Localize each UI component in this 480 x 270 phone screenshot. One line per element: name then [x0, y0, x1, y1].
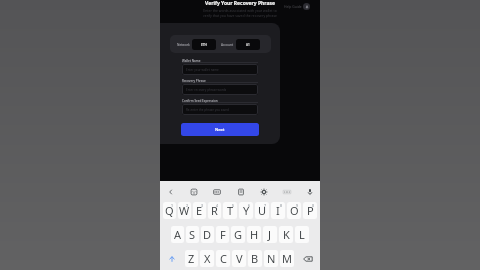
button[interactable]: Stickers	[187, 185, 200, 198]
staticText: U	[258, 203, 267, 218]
staticText: N	[267, 251, 276, 266]
staticText: Confirm Seed Expression	[182, 99, 218, 103]
button[interactable]: Shift	[161, 250, 183, 267]
button[interactable]: G	[231, 226, 245, 243]
staticText: O	[290, 203, 299, 218]
button[interactable]: Enter your wallet name	[182, 64, 258, 75]
button[interactable]: E	[193, 202, 206, 219]
button[interactable]: Back	[164, 185, 177, 198]
button[interactable]: J	[263, 226, 277, 243]
staticText: A	[174, 227, 182, 242]
button[interactable]: Account	[303, 3, 310, 10]
staticText: B	[251, 251, 259, 266]
button[interactable]: GIF	[210, 185, 223, 198]
button[interactable]: S	[186, 226, 199, 243]
button[interactable]: U	[255, 202, 269, 219]
button[interactable]: P	[303, 202, 317, 219]
button[interactable]: Settings	[257, 185, 270, 198]
staticText: 5	[232, 203, 235, 208]
button[interactable]: Y	[239, 202, 253, 219]
button[interactable]: Enter recovery phrase words	[182, 84, 258, 95]
staticText: Verify Your Recovery Phrase	[205, 0, 275, 7]
button[interactable]: K	[279, 226, 293, 243]
button[interactable]: N	[264, 250, 278, 267]
button[interactable]: M	[280, 250, 294, 267]
button[interactable]: O	[287, 202, 301, 219]
staticText: H	[250, 227, 259, 242]
staticText: Recovery Phrase	[182, 79, 206, 83]
staticText: X	[204, 251, 211, 266]
staticText: W	[179, 203, 190, 218]
staticText: 4	[216, 203, 219, 208]
staticText: C	[220, 251, 227, 266]
staticText: 7	[264, 203, 267, 208]
button[interactable]: More options	[280, 185, 293, 198]
staticText: M	[282, 251, 292, 266]
button[interactable]: D	[201, 226, 214, 243]
button[interactable]: F	[216, 226, 229, 243]
staticText: ETH	[201, 43, 207, 47]
staticText: Enter recovery phrase words	[186, 88, 227, 92]
button[interactable]: Backspace	[296, 250, 319, 267]
staticText: Z	[188, 251, 195, 266]
button[interactable]: I	[271, 202, 285, 219]
button[interactable]: V	[232, 250, 246, 267]
staticText: 2	[186, 203, 189, 208]
staticText: J	[268, 227, 272, 242]
staticText: Q	[165, 203, 174, 218]
staticText: Help Guide	[284, 4, 302, 9]
staticText: I	[276, 203, 280, 218]
button[interactable]: A	[171, 226, 184, 243]
staticText: Y	[243, 203, 250, 218]
staticText: K	[283, 227, 290, 242]
staticText: 3	[201, 203, 204, 208]
staticText: 8	[280, 203, 283, 208]
button[interactable]: C	[216, 250, 230, 267]
button[interactable]: R	[208, 202, 221, 219]
button[interactable]: Voice input	[303, 185, 316, 198]
button[interactable]: B	[248, 250, 262, 267]
button[interactable]: H	[247, 226, 261, 243]
staticText: 1	[171, 203, 174, 208]
button[interactable]: Re-enter the phrase you saved	[182, 104, 258, 115]
staticText: 6	[248, 203, 251, 208]
staticText: L	[299, 227, 305, 242]
button[interactable]: T	[223, 202, 237, 219]
staticText: T	[227, 203, 234, 218]
button[interactable]: Clipboard	[234, 185, 247, 198]
staticText: G	[234, 227, 243, 242]
staticText: Next	[215, 127, 225, 133]
button[interactable]: Network	[177, 39, 216, 50]
staticText: 9	[296, 203, 299, 208]
staticText: Wallet Name	[182, 59, 201, 63]
staticText: 0	[312, 203, 315, 208]
button[interactable]: Account	[221, 39, 260, 50]
staticText: F	[220, 227, 226, 242]
button[interactable]: L	[295, 226, 309, 243]
button[interactable]: Z	[185, 250, 198, 267]
staticText: E	[196, 203, 203, 218]
staticText: R	[211, 203, 218, 218]
staticText: D	[203, 227, 212, 242]
staticText: S	[189, 227, 196, 242]
staticText: Enter your wallet name	[186, 68, 219, 72]
staticText: Enter the words associated with your wal…	[203, 8, 277, 18]
staticText: Network	[177, 43, 190, 47]
button[interactable]: X	[200, 250, 214, 267]
staticText: Re-enter the phrase you saved	[186, 108, 229, 112]
button[interactable]: Q	[163, 202, 176, 219]
staticText: V	[236, 251, 243, 266]
staticText: #1	[246, 43, 250, 47]
staticText: P	[307, 203, 314, 218]
button[interactable]: W	[178, 202, 191, 219]
staticText: Account	[221, 43, 234, 47]
button[interactable]: Next	[181, 123, 259, 136]
